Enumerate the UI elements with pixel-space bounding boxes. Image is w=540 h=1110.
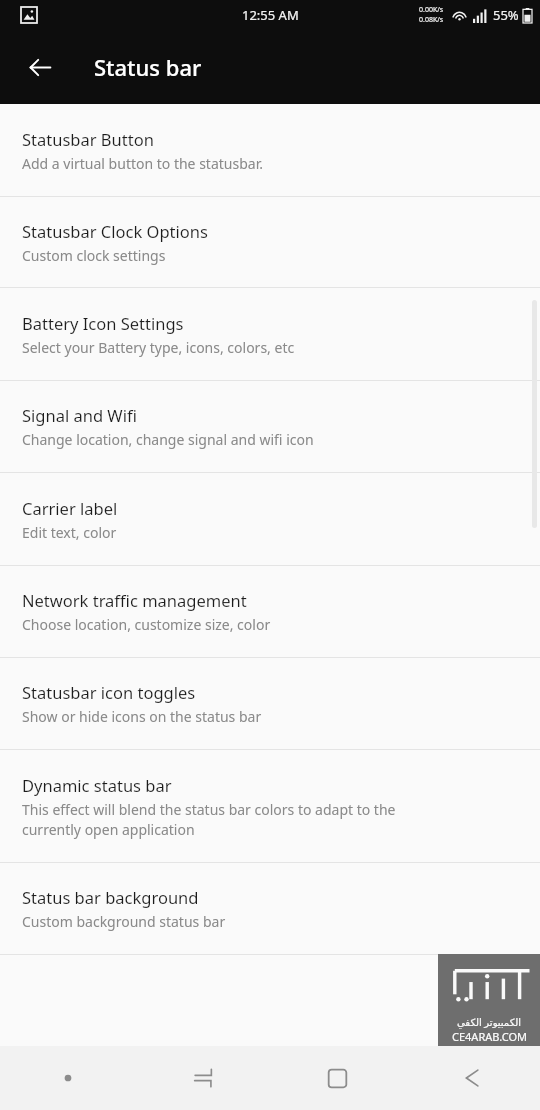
staticText: Status bar background [22,886,199,908]
staticText: CE4ARAB.COM [452,1029,527,1044]
staticText: Custom background status bar [22,912,226,931]
button[interactable]: Recent apps [135,1046,270,1110]
button[interactable]: Statusbar icon toggles [0,658,540,749]
button[interactable]: Home [270,1046,405,1110]
button[interactable]: Statusbar Clock Options [0,197,540,287]
staticText: 55% [493,6,519,24]
staticText: Signal and Wifi [22,404,137,426]
button[interactable]: Dynamic status bar [0,750,540,862]
button[interactable]: Statusbar Button [0,104,540,196]
staticText: Custom clock settings [22,246,166,265]
staticText: Statusbar Button [22,128,154,150]
staticText: Add a virtual button to the statusbar. [22,154,263,173]
staticText: This effect will blend the status bar co… [22,800,396,839]
staticText: الكمبيوتر الكفي [457,1015,521,1029]
staticText: Battery Icon Settings [22,312,184,334]
staticText: Edit text, color [22,523,117,542]
staticText: 0.00K/s [419,5,444,15]
button[interactable]: Status bar background [0,863,540,954]
button[interactable]: Network traffic management [0,566,540,657]
staticText: Change location, change signal and wifi … [22,430,314,449]
staticText: 12:55 AM [242,6,299,24]
staticText: Status bar [94,52,202,82]
staticText: Network traffic management [22,589,247,611]
staticText: Statusbar icon toggles [22,681,196,703]
button[interactable]: Back [20,47,60,87]
staticText: 0.08K/s [419,15,444,25]
staticText: Dynamic status bar [22,774,172,796]
staticText: Statusbar Clock Options [22,220,208,242]
staticText: Choose location, customize size, color [22,615,271,634]
button[interactable]: Back [405,1046,540,1110]
button[interactable]: Menu indicator [0,1046,135,1110]
staticText: Show or hide icons on the status bar [22,707,262,726]
button[interactable]: Carrier label [0,473,540,565]
button[interactable]: Battery Icon Settings [0,288,540,380]
staticText: Carrier label [22,497,118,519]
button[interactable]: Signal and Wifi [0,381,540,472]
staticText: Select your Battery type, icons, colors,… [22,338,295,357]
